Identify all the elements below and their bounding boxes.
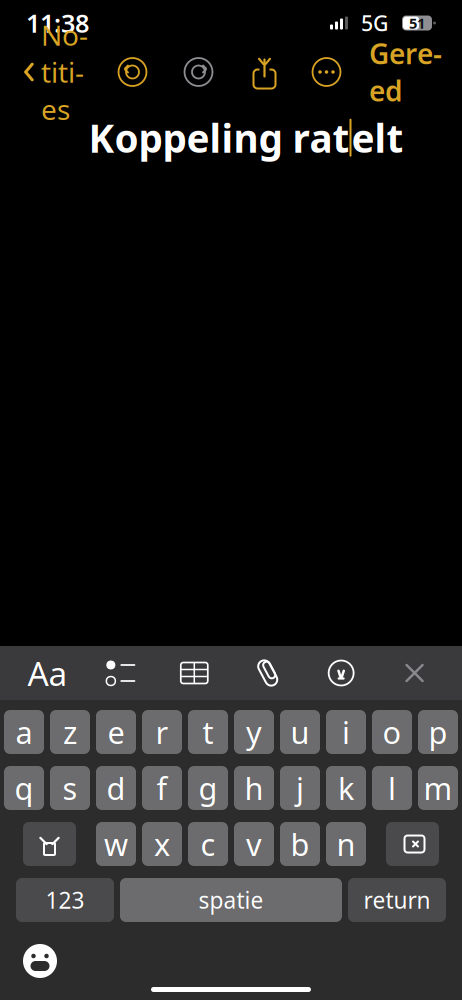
button[interactable]: m	[418, 766, 458, 810]
staticText: spatie	[198, 885, 263, 915]
staticText: h	[244, 768, 263, 808]
button[interactable]: q	[4, 766, 44, 810]
button[interactable]: l	[372, 766, 412, 810]
staticText: e	[107, 712, 124, 752]
staticText: Aa	[27, 651, 67, 695]
staticText: u	[290, 712, 309, 752]
button[interactable]: v	[234, 822, 274, 866]
staticText: 5G	[361, 9, 389, 37]
staticText: Koppeling rat	[88, 112, 349, 163]
button[interactable]: y	[234, 710, 274, 754]
button[interactable]: z	[50, 710, 90, 754]
button[interactable]: Notities	[12, 10, 98, 134]
staticText: x	[154, 824, 170, 864]
staticText: q	[14, 768, 33, 808]
button[interactable]: Shift	[23, 822, 76, 866]
staticText: 11:38	[26, 6, 89, 40]
staticText: r	[155, 712, 168, 752]
button[interactable]: Share	[242, 50, 286, 94]
staticText: d	[106, 768, 125, 808]
button[interactable]: x	[142, 822, 182, 866]
button[interactable]: return	[348, 878, 446, 922]
staticText: i	[342, 712, 350, 752]
staticText: k	[338, 768, 354, 808]
staticText: z	[63, 712, 77, 752]
staticText: b	[290, 824, 309, 864]
staticText: j	[296, 768, 304, 808]
button[interactable]: Table	[168, 650, 220, 696]
button[interactable]: 123	[16, 878, 114, 922]
button[interactable]: t	[188, 710, 228, 754]
staticText: return	[363, 885, 430, 915]
button[interactable]: n	[326, 822, 366, 866]
staticText: l	[388, 768, 396, 808]
button[interactable]: g	[188, 766, 228, 810]
button[interactable]: i	[326, 710, 366, 754]
button[interactable]: Attach	[242, 650, 294, 696]
button[interactable]: w	[96, 822, 136, 866]
button[interactable]: More	[304, 50, 348, 94]
button[interactable]: spatie	[120, 878, 342, 922]
button[interactable]: a	[4, 710, 44, 754]
button[interactable]: Undo	[110, 50, 154, 94]
button[interactable]: Emoji	[0, 937, 58, 985]
button[interactable]: Format	[21, 650, 73, 696]
staticText: 51	[409, 13, 425, 33]
staticText: t	[202, 712, 213, 752]
staticText: v	[246, 824, 262, 864]
button[interactable]: u	[280, 710, 320, 754]
staticText: s	[62, 768, 77, 808]
button[interactable]: Redo	[176, 50, 220, 94]
button[interactable]: p	[418, 710, 458, 754]
button[interactable]: e	[96, 710, 136, 754]
button[interactable]: f	[142, 766, 182, 810]
staticText: p	[428, 712, 447, 752]
staticText: Notities	[41, 16, 88, 128]
staticText: c	[200, 824, 215, 864]
button[interactable]: s	[50, 766, 90, 810]
staticText: a	[15, 712, 32, 752]
button[interactable]: d	[96, 766, 136, 810]
staticText: Gereed	[369, 35, 442, 109]
staticText: y	[246, 712, 262, 752]
staticText: g	[198, 768, 217, 808]
button[interactable]: Close keyboard	[389, 650, 441, 696]
staticText: elt	[351, 112, 403, 163]
staticText: o	[382, 712, 401, 752]
button[interactable]: b	[280, 822, 320, 866]
button[interactable]: j	[280, 766, 320, 810]
button[interactable]: c	[188, 822, 228, 866]
staticText: f	[156, 768, 167, 808]
button[interactable]: Checklist	[95, 650, 147, 696]
staticText: n	[336, 824, 355, 864]
staticText: m	[423, 768, 452, 808]
button[interactable]: Markup	[315, 650, 367, 696]
button[interactable]: Delete	[386, 822, 439, 866]
button[interactable]: o	[372, 710, 412, 754]
button[interactable]: r	[142, 710, 182, 754]
staticText: 123	[45, 885, 84, 915]
button[interactable]: h	[234, 766, 274, 810]
button[interactable]: Gereed	[361, 29, 450, 115]
button[interactable]: k	[326, 766, 366, 810]
staticText: w	[104, 824, 128, 864]
